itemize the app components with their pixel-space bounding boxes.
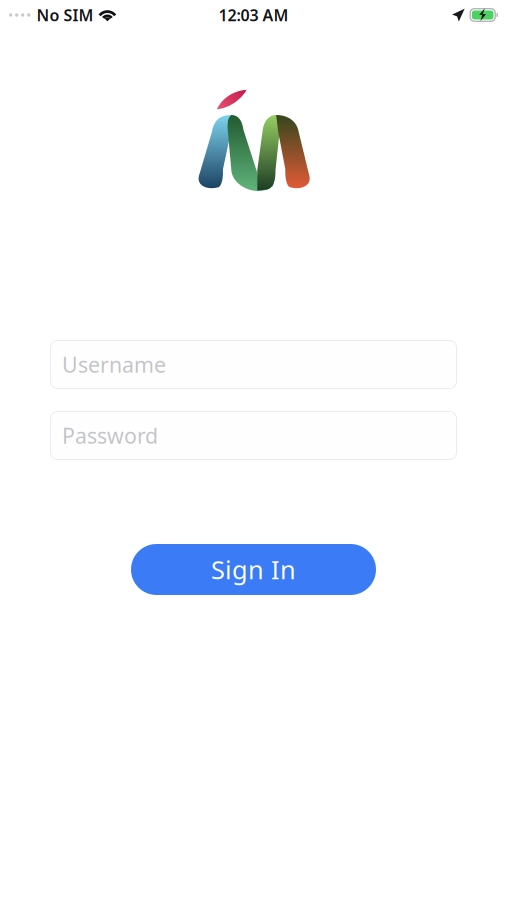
- staticText: Password: [62, 421, 158, 450]
- staticText: Username: [62, 350, 166, 379]
- staticText: Sign In: [211, 553, 296, 586]
- staticText: No SIM: [36, 4, 93, 26]
- staticText: 12:03 AM: [218, 4, 288, 26]
- button[interactable]: Sign In: [131, 544, 376, 595]
